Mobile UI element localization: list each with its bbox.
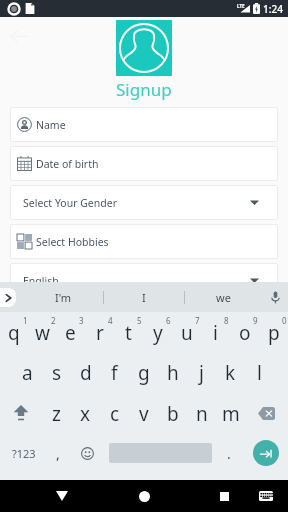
staticText: Select Your Gender [23, 196, 117, 210]
button[interactable]: b [158, 393, 187, 435]
button[interactable]: z [42, 393, 71, 435]
staticText: 4 [108, 315, 113, 326]
button[interactable]: More suggestions [0, 288, 16, 307]
button[interactable]: f [100, 352, 129, 394]
staticText: 1 [23, 315, 28, 326]
button[interactable]: Switch keyboard [246, 480, 286, 512]
staticText: u [181, 320, 193, 346]
staticText: Select Hobbies [36, 235, 109, 249]
button[interactable]: . [215, 432, 243, 474]
button[interactable]: Voice input [262, 282, 288, 312]
staticText: b [167, 401, 179, 427]
button[interactable]: Recent apps [204, 480, 244, 512]
staticText: j [199, 360, 204, 386]
staticText: c [110, 401, 120, 427]
staticText: I [142, 290, 146, 305]
button[interactable]: g [129, 352, 158, 394]
staticText: r [96, 320, 104, 346]
staticText: 2 [51, 315, 56, 326]
staticText: l [257, 360, 262, 386]
staticText: Signup [116, 78, 172, 101]
button[interactable]: m [216, 393, 245, 435]
button[interactable]: r [85, 312, 114, 354]
button[interactable]: n [187, 393, 216, 435]
button[interactable]: h [158, 352, 187, 394]
button[interactable]: x [71, 393, 100, 435]
staticText: q [8, 320, 20, 346]
button[interactable]: Enter [243, 432, 288, 474]
staticText: we [216, 290, 231, 305]
staticText: 1:24 [263, 2, 283, 16]
staticText: p [268, 320, 280, 346]
button[interactable]: Home [124, 480, 164, 512]
staticText: k [225, 360, 236, 386]
button[interactable]: I'm [23, 282, 103, 312]
staticText: m [222, 401, 240, 427]
button[interactable]: Emoji [69, 432, 106, 474]
staticText: , [56, 444, 60, 463]
button[interactable]: v [129, 393, 158, 435]
button[interactable]: p [259, 312, 288, 354]
button[interactable]: o [230, 312, 259, 354]
staticText: t [125, 320, 132, 346]
staticText: w [35, 320, 50, 346]
button[interactable]: i [201, 312, 230, 354]
button[interactable]: we [184, 282, 262, 312]
button[interactable]: t [114, 312, 143, 354]
button[interactable]: I [103, 282, 184, 312]
button[interactable]: Name [10, 107, 278, 142]
staticText: 0 [282, 315, 287, 326]
staticText: z [52, 401, 61, 427]
button[interactable]: ?123 [0, 432, 47, 474]
staticText: n [196, 401, 208, 427]
button[interactable]: u [172, 312, 201, 354]
staticText: 5 [137, 315, 142, 326]
staticText: Name [36, 118, 66, 132]
staticText: y [153, 320, 163, 346]
button[interactable]: k [216, 352, 245, 394]
button[interactable]: English [10, 263, 278, 298]
staticText: English [23, 274, 59, 288]
button[interactable]: , [47, 432, 69, 474]
button[interactable]: q [0, 312, 28, 354]
button[interactable]: Select Your Gender [10, 185, 278, 220]
staticText: x [80, 401, 91, 427]
staticText: v [139, 401, 149, 427]
button[interactable]: Backspace [245, 392, 288, 434]
staticText: I'm [55, 290, 72, 305]
staticText: Date of birth [36, 157, 99, 171]
button[interactable]: Space [106, 432, 215, 474]
staticText: ?123 [12, 446, 36, 461]
button[interactable]: Back [42, 480, 82, 512]
button[interactable]: y [143, 312, 172, 354]
staticText: d [80, 360, 92, 386]
staticText: 7 [195, 315, 200, 326]
staticText: h [167, 360, 179, 386]
staticText: g [138, 360, 150, 386]
button[interactable]: w [28, 312, 56, 354]
staticText: 8 [224, 315, 229, 326]
staticText: e [65, 320, 76, 346]
button[interactable]: a [13, 352, 42, 394]
button[interactable]: j [187, 352, 216, 394]
staticText: 6 [166, 315, 171, 326]
button[interactable]: Date of birth [10, 146, 278, 181]
staticText: a [22, 360, 33, 386]
staticText: . [227, 444, 231, 463]
staticText: LTE [237, 3, 245, 9]
button[interactable]: c [100, 393, 129, 435]
button[interactable]: e [56, 312, 85, 354]
staticText: s [52, 360, 62, 386]
staticText: 3 [79, 315, 84, 326]
staticText: f [111, 360, 118, 386]
staticText: i [213, 320, 218, 346]
button[interactable]: l [245, 352, 274, 394]
staticText: o [239, 320, 251, 346]
button[interactable]: Select Hobbies [10, 224, 278, 259]
button[interactable]: s [42, 352, 71, 394]
staticText: 9 [253, 315, 258, 326]
button[interactable]: d [71, 352, 100, 394]
button[interactable]: Shift [0, 392, 42, 434]
